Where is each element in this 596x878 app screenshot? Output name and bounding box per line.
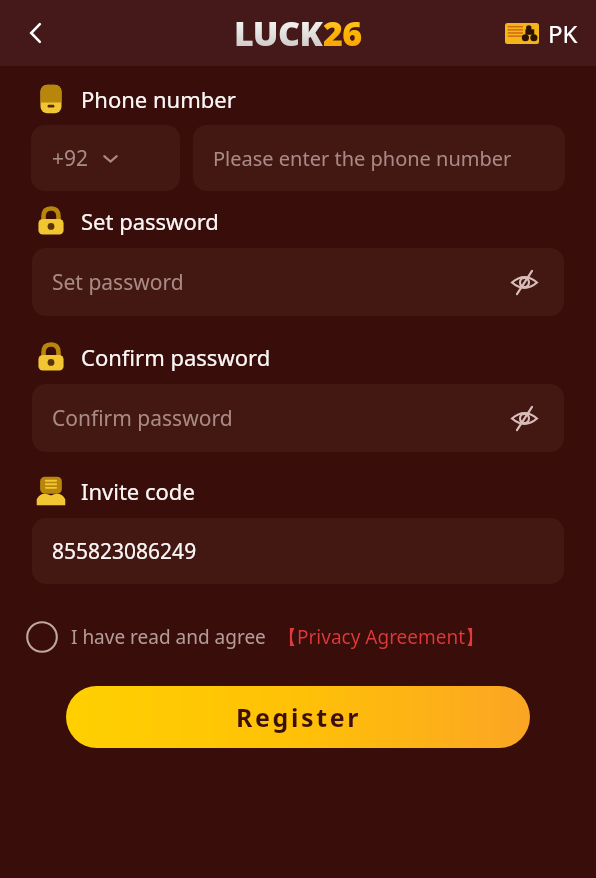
- button[interactable]: Country flag: [505, 17, 578, 50]
- button[interactable]: +92: [31, 125, 180, 191]
- other: Country flag: [505, 23, 539, 44]
- staticText: 26: [323, 10, 362, 56]
- staticText: Please enter the phone number: [213, 145, 512, 172]
- staticText: 855823086249: [52, 537, 197, 566]
- staticText: Confirm password: [81, 342, 271, 372]
- button[interactable]: Confirm password: [32, 384, 564, 452]
- staticText: I have read and agree: [71, 624, 266, 650]
- button[interactable]: Agree checkbox: [26, 621, 570, 653]
- staticText: Invite code: [81, 476, 195, 506]
- button[interactable]: Set password: [32, 248, 564, 316]
- staticText: 【Privacy Agreement】: [278, 624, 485, 650]
- other: Agree checkbox: [26, 621, 58, 653]
- staticText: PK: [548, 17, 578, 50]
- staticText: Register: [236, 700, 361, 734]
- staticText: +92: [52, 144, 89, 173]
- staticText: Set password: [81, 206, 219, 236]
- button[interactable]: Show password: [502, 396, 546, 440]
- button[interactable]: Register: [66, 686, 530, 748]
- button[interactable]: Back: [14, 11, 58, 55]
- button[interactable]: 855823086249: [32, 518, 564, 584]
- staticText: LUCK: [234, 10, 323, 56]
- staticText: Phone number: [81, 84, 236, 114]
- staticText: Set password: [52, 268, 184, 297]
- button[interactable]: Show password: [502, 260, 546, 304]
- button[interactable]: Please enter the phone number: [193, 125, 565, 191]
- staticText: Confirm password: [52, 404, 233, 433]
